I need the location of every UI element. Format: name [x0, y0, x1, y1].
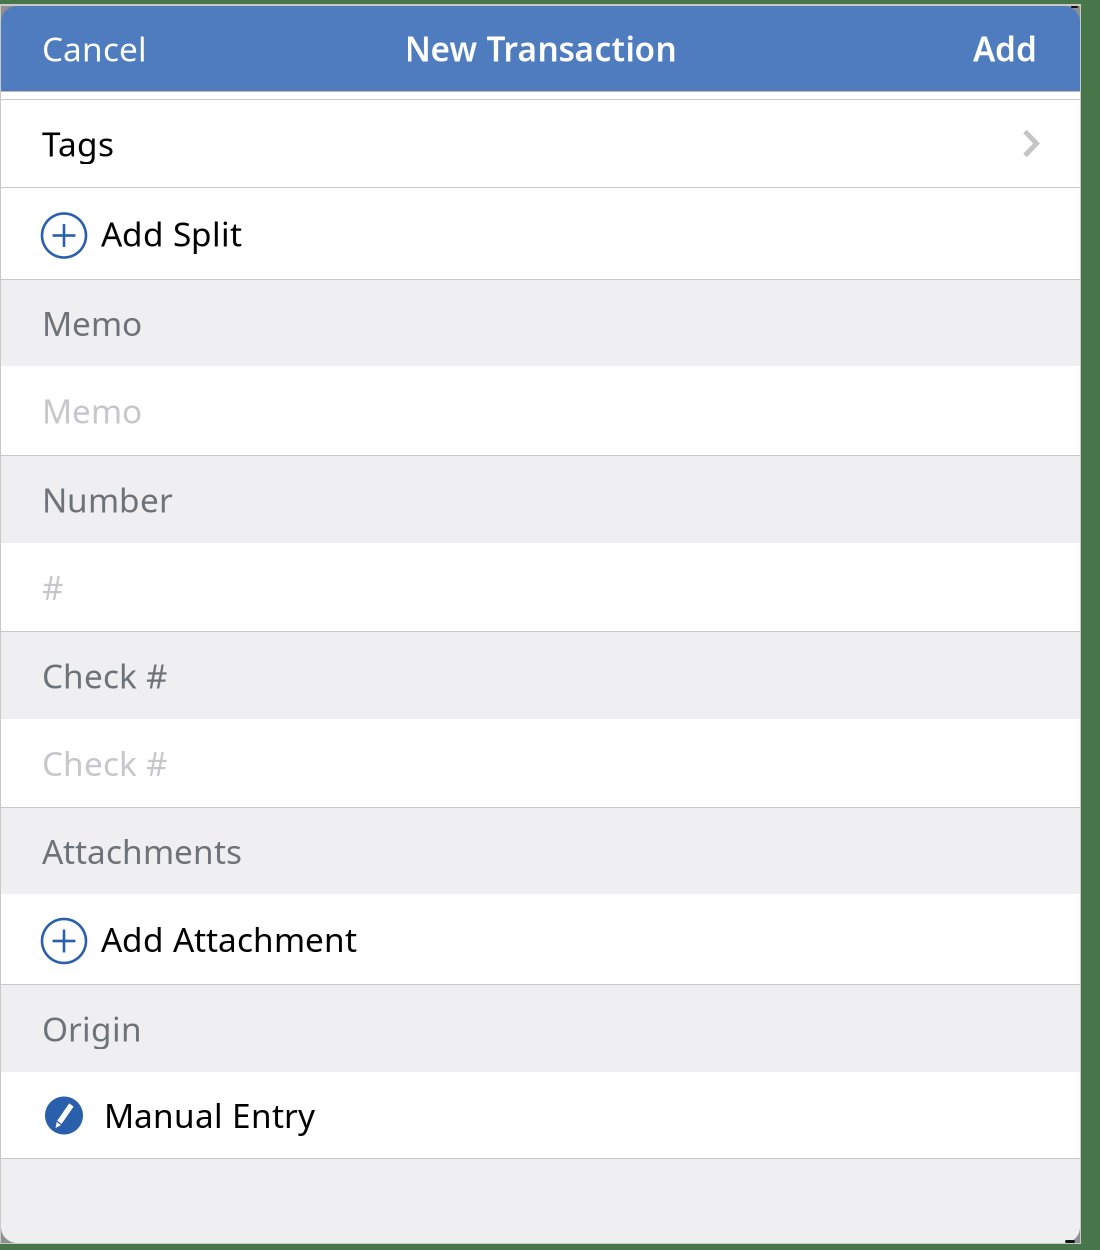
- button[interactable]: Add: [952, 6, 1080, 91]
- staticText: Origin: [42, 1006, 142, 1051]
- staticText: New Transaction: [404, 26, 676, 71]
- staticText: Attachments: [42, 829, 242, 873]
- button[interactable]: Add Split: [1, 188, 1080, 280]
- button[interactable]: Cancel: [1, 6, 171, 91]
- staticText: Manual Entry: [104, 1093, 315, 1137]
- staticText: Add Split: [101, 211, 242, 256]
- button[interactable]: Add Attachment: [1, 894, 1080, 985]
- button[interactable]: Check #: [1, 719, 1080, 808]
- button[interactable]: Tags: [1, 100, 1080, 188]
- button[interactable]: #: [1, 543, 1080, 632]
- staticText: Add Attachment: [101, 917, 357, 961]
- staticText: #: [42, 565, 64, 609]
- staticText: Number: [42, 477, 173, 522]
- staticText: Tags: [42, 121, 114, 166]
- button[interactable]: Manual Entry: [1, 1072, 1080, 1159]
- staticText: Check #: [42, 741, 168, 785]
- staticText: Add: [973, 26, 1037, 71]
- staticText: Cancel: [42, 26, 147, 71]
- staticText: Check #: [42, 653, 168, 698]
- staticText: Memo: [42, 388, 142, 433]
- button[interactable]: Memo: [1, 366, 1080, 456]
- staticText: Memo: [42, 301, 142, 345]
